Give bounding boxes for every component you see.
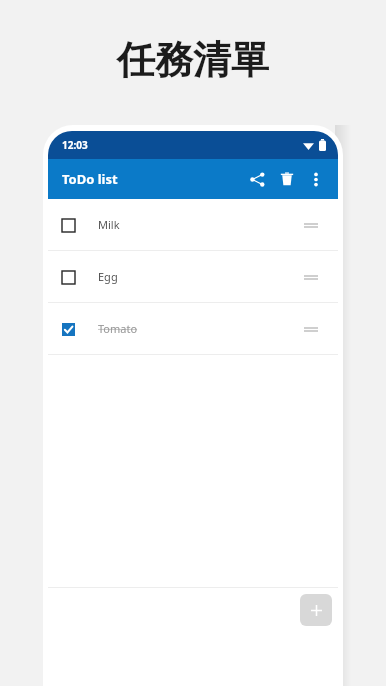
button[interactable]: More options (302, 165, 330, 193)
button[interactable]: Delete (272, 164, 302, 194)
staticText: ToDo list (62, 170, 118, 188)
other: Reorder Milk (298, 212, 324, 238)
staticText: Milk (98, 217, 120, 232)
staticText: 任務清單 (117, 36, 269, 84)
button[interactable]: Check Egg (62, 262, 92, 292)
button[interactable]: Add task (300, 594, 332, 626)
other: Reorder Egg (298, 264, 324, 290)
button[interactable]: Check Milk (48, 199, 338, 250)
button[interactable]: Uncheck Tomato (62, 314, 92, 344)
other: Reorder Tomato (298, 316, 324, 342)
button[interactable]: Check Egg (48, 251, 338, 302)
staticText: Egg (98, 269, 118, 284)
button[interactable]: Check Milk (62, 210, 92, 240)
button[interactable]: Share (242, 164, 272, 194)
staticText: 12:03 (62, 138, 88, 152)
staticText: Tomato (98, 321, 138, 336)
button[interactable]: Uncheck Tomato (48, 303, 338, 354)
